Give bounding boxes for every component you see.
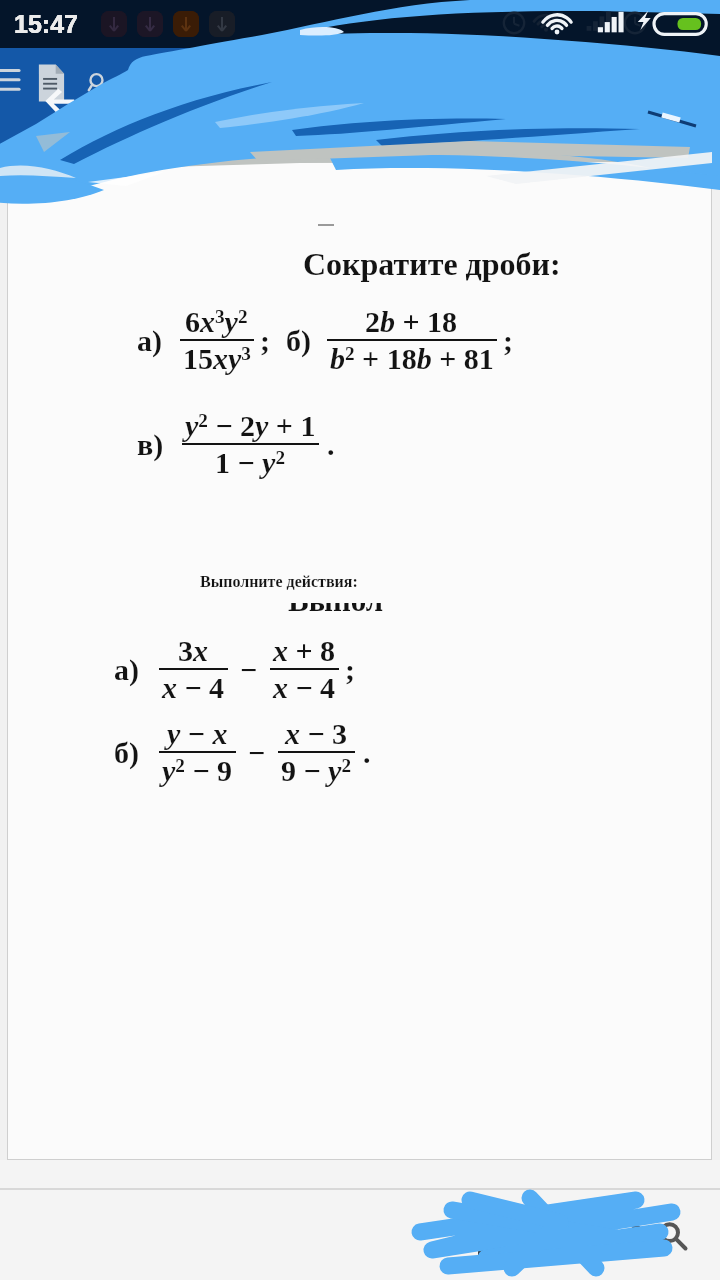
staticText: x − 4 [162,671,225,704]
staticText: 6x3y2 [185,305,248,338]
staticText: ; [503,324,513,357]
staticText: 15xy3 [183,342,251,375]
staticText: − [248,736,266,769]
staticText: 9 − y2 [281,754,352,787]
staticText: x − 4 [273,671,336,704]
staticText: y2 − 2y + 1 [185,409,316,442]
button[interactable]: Zoom [650,1213,694,1257]
button[interactable]: Document [34,62,69,104]
staticText: y − x [167,717,228,750]
staticText: 15:47 [14,10,78,38]
staticText: ; [345,653,355,686]
button[interactable]: Menu [0,58,34,100]
staticText: . [327,428,335,461]
staticText: y2 − 9 [162,754,233,787]
button[interactable]: Search [84,72,108,96]
staticText: 3x [178,634,208,667]
staticText: Выполните действия: [200,573,358,591]
staticText: 1 − y2 [215,446,286,479]
staticText: Выпол [288,603,384,617]
button[interactable]: Next page [580,1213,624,1257]
staticText: − [240,653,258,686]
staticText: а) [137,324,162,357]
staticText: x − 3 [285,717,348,750]
staticText: . [363,736,371,769]
staticText: b2 + 18b + 81 [330,342,494,375]
staticText: б) [286,324,311,357]
staticText: в) [137,428,164,461]
staticText: а) [114,653,139,686]
staticText: 15:47 [14,10,78,38]
staticText: Сократите дроби: [303,246,561,281]
staticText: x + 8 [273,634,336,667]
staticText: б) [114,736,139,769]
staticText: ; [260,324,270,357]
button[interactable]: Back [37,87,75,115]
staticText: 2b + 18 [365,305,458,338]
